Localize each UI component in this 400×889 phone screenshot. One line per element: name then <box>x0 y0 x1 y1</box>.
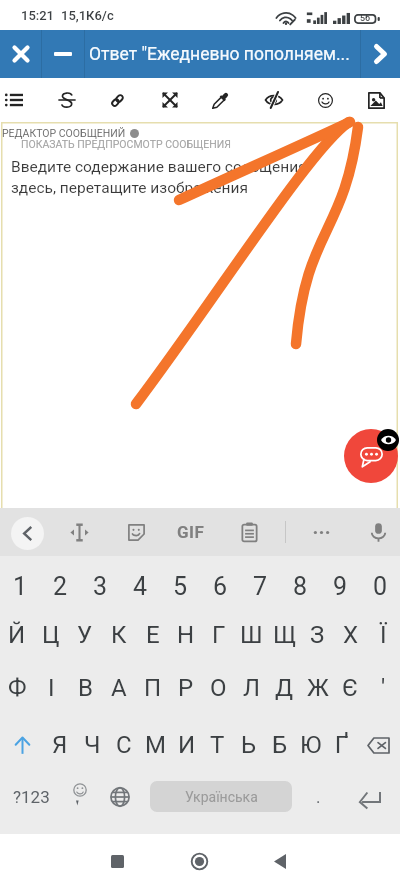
button[interactable]: More options <box>301 512 341 552</box>
button[interactable]: А <box>102 664 136 712</box>
staticText: 1 <box>13 572 28 601</box>
button[interactable]: ?123 <box>6 773 56 821</box>
button[interactable]: Bulleted list <box>0 79 35 121</box>
staticText: ПОКАЗАТЬ ПРЕДПРОСМОТР СООБЩЕНИЯ <box>21 138 231 150</box>
button[interactable]: Insert link <box>96 79 138 121</box>
button[interactable]: Emoji <box>304 79 346 121</box>
button[interactable]: 6 <box>200 562 240 610</box>
button[interactable]: GIF <box>171 512 211 552</box>
staticText: И <box>178 731 196 759</box>
button[interactable]: Г <box>202 611 235 659</box>
button[interactable]: 2 <box>40 562 80 610</box>
button[interactable]: Я <box>44 721 76 769</box>
button[interactable]: Clipboard <box>229 512 269 552</box>
button[interactable]: Д <box>268 664 301 712</box>
staticText: Ц <box>42 621 60 649</box>
staticText: Л <box>243 674 260 702</box>
staticText: У <box>77 621 93 649</box>
button[interactable]: Text editing <box>59 512 99 552</box>
button[interactable]: Back <box>256 837 304 885</box>
button[interactable]: Ю <box>295 721 326 769</box>
button[interactable]: Щ <box>268 611 301 659</box>
button[interactable]: Ц <box>34 611 68 659</box>
button[interactable]: 0 <box>360 562 400 610</box>
button[interactable]: Voice input <box>358 512 398 552</box>
staticText: А <box>111 674 127 702</box>
button[interactable]: Strikethrough <box>46 79 88 121</box>
button[interactable]: К <box>102 611 136 659</box>
button[interactable]: Change language <box>100 773 140 821</box>
button[interactable]: Ї <box>367 611 400 659</box>
button[interactable]: Ответ "Ежедневно пополняем... <box>85 30 360 78</box>
button[interactable]: Color picker <box>200 79 242 121</box>
button[interactable]: Preview <box>377 429 399 451</box>
button[interactable]: Minimize <box>42 30 84 78</box>
button[interactable]: Ш <box>235 611 268 659</box>
button[interactable]: 5 <box>160 562 200 610</box>
button[interactable]: Stickers <box>116 512 156 552</box>
staticText: Ь <box>241 731 257 759</box>
button[interactable]: Є <box>334 664 367 712</box>
staticText: ?123 <box>13 787 50 807</box>
button[interactable]: Ь <box>233 721 264 769</box>
staticText: Ю <box>300 731 322 759</box>
button[interactable]: Expand <box>149 79 191 121</box>
button[interactable]: В <box>68 664 102 712</box>
button[interactable]: Enter <box>345 773 395 821</box>
button[interactable]: І <box>34 664 68 712</box>
button[interactable]: ' <box>367 664 400 712</box>
button[interactable]: Ж <box>301 664 334 712</box>
staticText: О <box>210 674 227 702</box>
button[interactable]: Insert image <box>355 79 397 121</box>
button[interactable]: 8 <box>280 562 320 610</box>
button[interactable]: 9 <box>320 562 360 610</box>
button[interactable]: Л <box>235 664 268 712</box>
button[interactable]: 1 <box>0 562 40 610</box>
staticText: В <box>78 674 93 702</box>
button[interactable]: Shift <box>0 721 44 769</box>
button[interactable]: З <box>301 611 334 659</box>
button[interactable]: Backspace <box>357 721 400 769</box>
button[interactable]: Н <box>169 611 202 659</box>
staticText: Ї <box>380 621 387 649</box>
button[interactable]: Е <box>136 611 169 659</box>
button[interactable]: 4 <box>120 562 160 610</box>
button[interactable]: Х <box>334 611 367 659</box>
button[interactable]: Й <box>0 611 34 659</box>
button[interactable]: . <box>298 773 338 821</box>
staticText: Р <box>178 674 194 702</box>
button[interactable]: 7 <box>240 562 280 610</box>
staticText: Ш <box>240 621 263 649</box>
button[interactable]: Recents <box>93 837 141 885</box>
button[interactable]: Ґ <box>326 721 357 769</box>
button[interactable]: О <box>202 664 235 712</box>
button[interactable]: Українська <box>150 781 292 812</box>
button[interactable]: Т <box>202 721 233 769</box>
button[interactable]: 3 <box>80 562 120 610</box>
staticText: 2 <box>53 572 68 601</box>
button[interactable]: Comma <box>58 773 100 821</box>
button[interactable]: Б <box>264 721 295 769</box>
staticText: РЕДАКТОР СООБЩЕНИЙ <box>2 127 126 139</box>
staticText: Ж <box>307 674 329 702</box>
button[interactable]: Home <box>175 837 223 885</box>
staticText: 6 <box>213 572 228 601</box>
button[interactable]: Back <box>11 517 44 550</box>
button[interactable]: Ф <box>0 664 34 712</box>
button[interactable]: Send <box>361 30 400 78</box>
button[interactable]: С <box>108 721 140 769</box>
staticText: Ґ <box>335 731 349 759</box>
button[interactable]: У <box>68 611 102 659</box>
staticText: Ч <box>84 731 101 759</box>
staticText: С <box>116 731 132 759</box>
button[interactable]: Close <box>0 30 41 78</box>
button[interactable]: Ч <box>76 721 108 769</box>
button[interactable]: И <box>171 721 202 769</box>
button[interactable]: Hide <box>253 79 295 121</box>
staticText: Т <box>210 731 225 759</box>
button[interactable]: М <box>140 721 171 769</box>
staticText: 4 <box>133 572 148 601</box>
button[interactable]: Р <box>169 664 202 712</box>
button[interactable]: П <box>136 664 169 712</box>
button[interactable]: Chat <box>344 429 398 483</box>
